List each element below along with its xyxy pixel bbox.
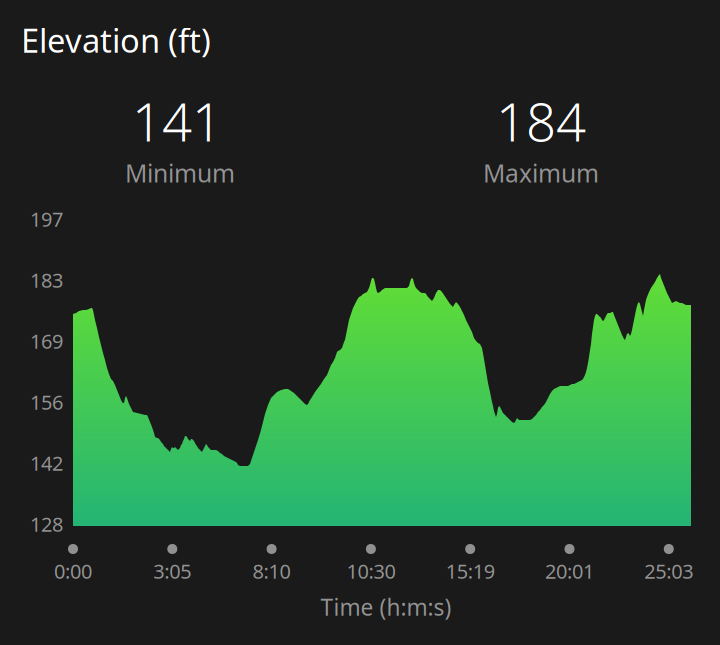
staticText: 183 [30,266,63,294]
staticText: 169 [30,327,63,355]
staticText: Elevation (ft) [21,18,211,62]
staticText: 10:30 [346,557,395,585]
staticText: 8:10 [253,557,291,585]
staticText: 0:00 [54,557,92,585]
staticText: 141 [132,85,222,157]
staticText: Time (h:m:s) [320,592,451,622]
staticText: 20:01 [545,557,594,585]
button[interactable]: Elevation (ft) [0,0,720,645]
staticText: Maximum [483,156,599,190]
staticText: 197 [30,205,63,233]
staticText: 128 [30,510,63,538]
staticText: 15:19 [446,557,495,585]
staticText: 156 [30,388,63,416]
staticText: 184 [496,85,586,157]
staticText: Minimum [125,156,235,190]
staticText: 3:05 [153,557,191,585]
staticText: 25:03 [644,557,693,585]
staticText: 142 [30,449,63,477]
